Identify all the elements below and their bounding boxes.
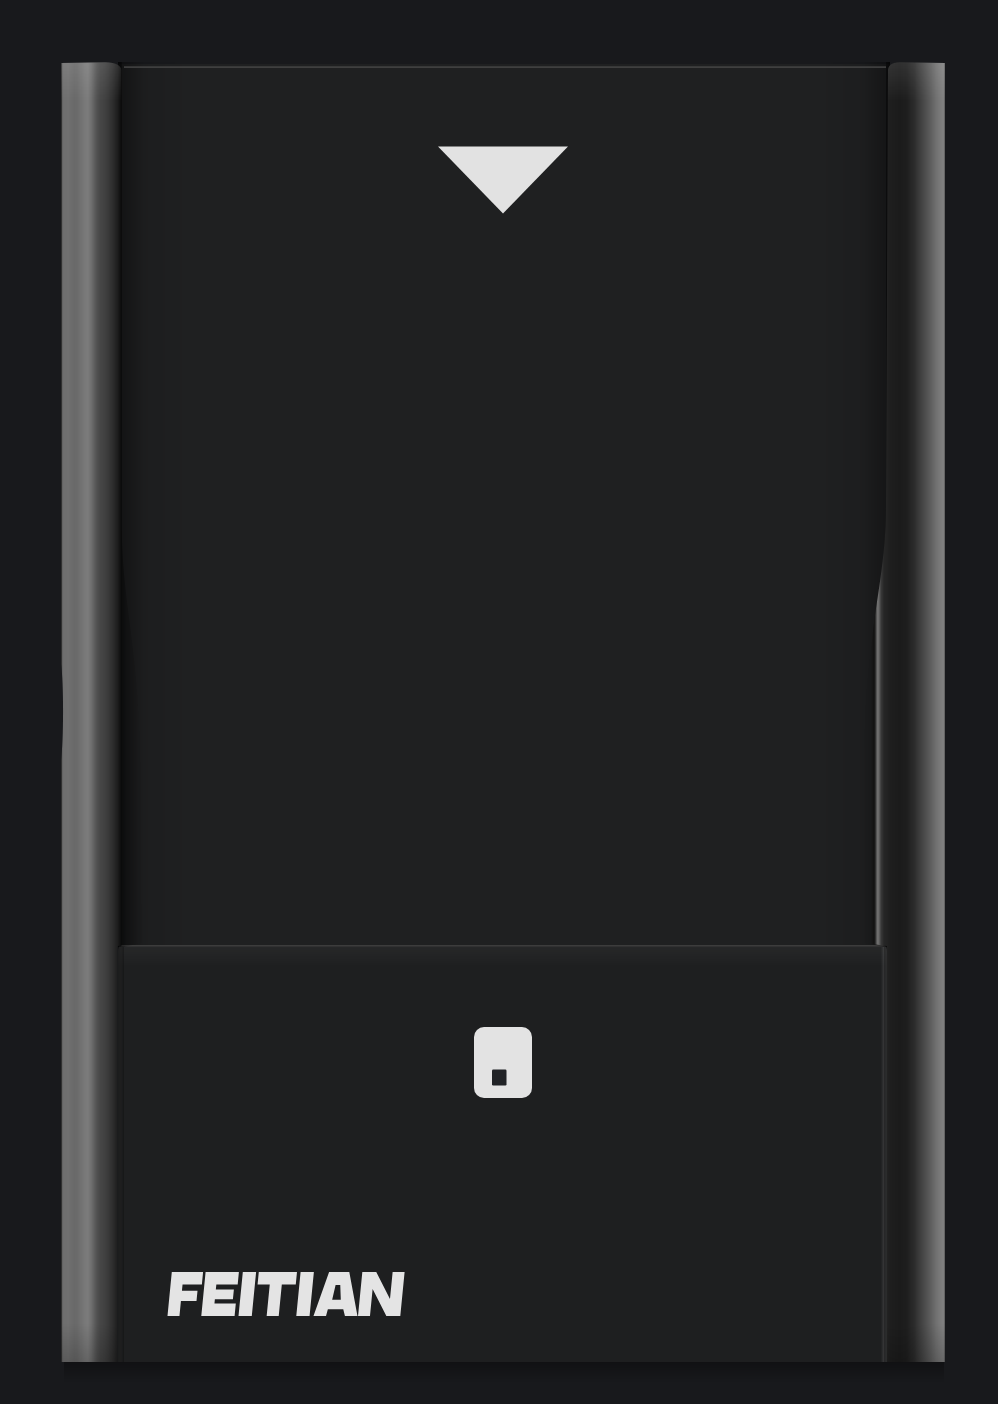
button[interactable]: Eject card	[438, 140, 570, 220]
button[interactable]: Card slot	[470, 1023, 536, 1103]
button[interactable]: FEITIAN	[165, 1266, 413, 1324]
